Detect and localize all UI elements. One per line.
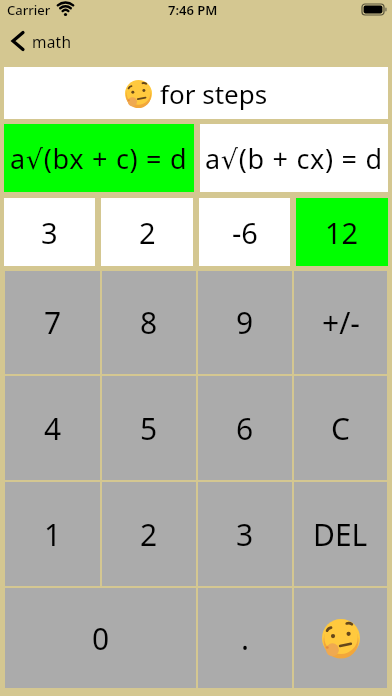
staticText: C [331,408,350,449]
staticText: 0 [92,618,110,659]
staticText: 2 [139,213,156,252]
staticText: +/- [322,302,360,343]
button[interactable]: 0 [5,588,196,688]
staticText: a√(b + cx) = d [205,140,383,177]
button[interactable] [294,588,387,688]
button[interactable]: a√(b + cx) = d [200,124,388,192]
staticText: 12 [325,213,359,252]
staticText: a√(bx + c) = d [10,140,188,177]
button[interactable]: 2 [102,482,196,586]
staticText: 7:46 PM [168,1,218,19]
button[interactable]: 12 [296,198,388,266]
button[interactable]: 2 [101,198,193,266]
button[interactable]: 6 [198,376,292,480]
staticText: 3 [41,213,58,252]
button[interactable]: 5 [102,376,196,480]
button[interactable]: 3 [4,198,95,266]
staticText: 3 [236,514,254,555]
button[interactable]: +/- [294,271,387,374]
staticText: 7 [44,302,62,343]
button[interactable]: 3 [198,482,292,586]
staticText: 8 [140,302,158,343]
staticText: DEL [313,514,368,555]
button[interactable]: a√(bx + c) = d [4,124,194,192]
staticText: . [241,618,250,659]
staticText: 1 [44,514,62,555]
button[interactable]: for steps [4,67,388,119]
staticText: 4 [44,408,62,449]
button[interactable]: 7 [5,271,100,374]
staticText: for steps [160,76,268,111]
staticText: math [32,31,72,52]
staticText: -6 [232,213,258,252]
staticText: 9 [236,302,254,343]
button[interactable]: 9 [198,271,292,374]
button[interactable]: DEL [294,482,387,586]
staticText: Carrier [7,1,51,19]
button[interactable]: 8 [102,271,196,374]
staticText: 6 [236,408,254,449]
button[interactable]: -6 [199,198,290,266]
staticText: 2 [140,514,158,555]
button[interactable]: C [294,376,387,480]
button[interactable]: math [11,28,91,54]
staticText: 5 [140,408,158,449]
button[interactable]: . [198,588,292,688]
button[interactable]: 4 [5,376,100,480]
button[interactable]: 1 [5,482,100,586]
